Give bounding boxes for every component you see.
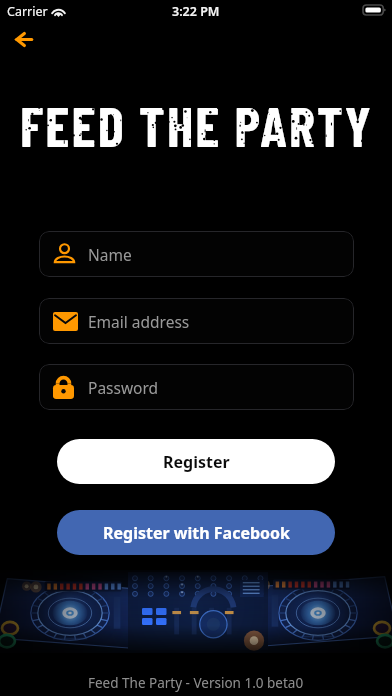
button[interactable]: Register (57, 439, 335, 484)
button[interactable]: Register with Facebook (57, 510, 335, 555)
staticText: Password (88, 377, 159, 398)
staticText: Feed The Party - Version 1.0 beta0 (88, 674, 304, 692)
staticText: Name (88, 244, 132, 265)
button[interactable] (39, 231, 354, 277)
staticText: Register (163, 451, 230, 473)
button[interactable]: Back (2, 25, 46, 53)
staticText: Email address (88, 311, 190, 332)
button[interactable] (39, 298, 354, 344)
staticText: Carrier (7, 3, 48, 20)
staticText: Register with Facebook (103, 522, 290, 544)
staticText: 3:22 PM (172, 3, 220, 20)
button[interactable] (39, 364, 354, 410)
staticText: FEED THE PARTY (20, 92, 373, 158)
